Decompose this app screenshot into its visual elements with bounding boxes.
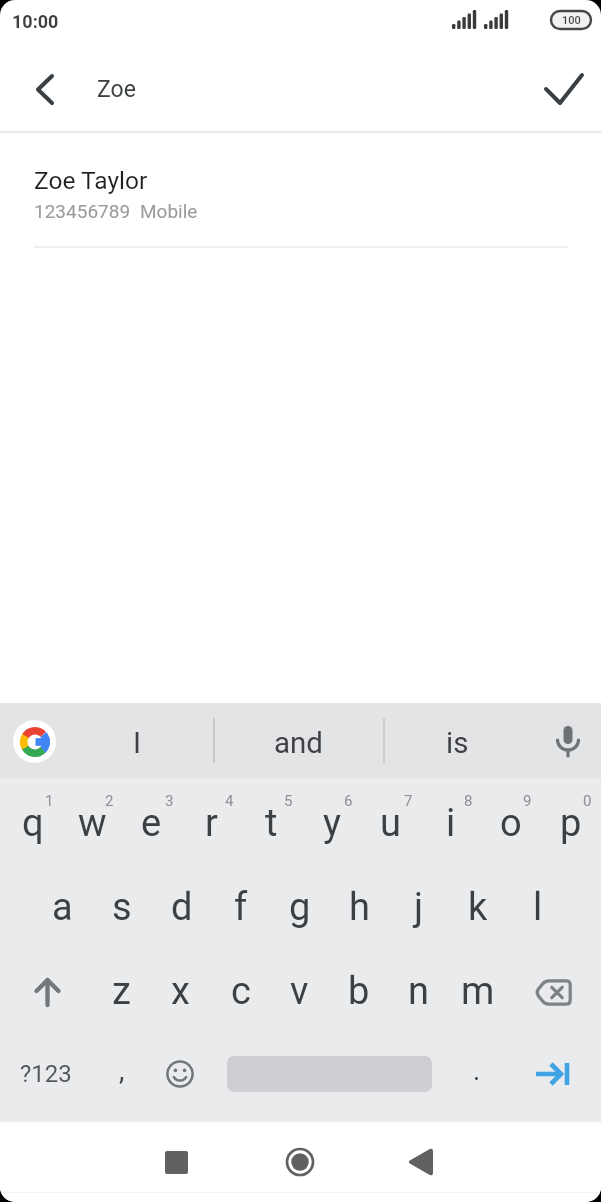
staticText: i	[446, 801, 456, 846]
staticText: a	[52, 885, 73, 930]
staticText: x	[171, 969, 190, 1014]
staticText: z	[112, 969, 131, 1014]
staticText: u	[380, 801, 401, 846]
staticText: 1	[45, 792, 54, 810]
staticText: Zoe Taylor	[34, 166, 148, 195]
staticText: .	[473, 1055, 481, 1087]
staticText: g	[289, 885, 311, 930]
button[interactable]	[152, 1046, 208, 1102]
button[interactable]: x	[151, 950, 210, 1036]
button[interactable]: d	[152, 864, 211, 950]
button[interactable]	[10, 950, 85, 1036]
button[interactable]	[277, 1139, 323, 1185]
button[interactable]: a	[33, 864, 92, 950]
staticText: 3	[165, 792, 174, 810]
staticText: 8	[464, 792, 473, 810]
staticText: h	[349, 885, 370, 930]
staticText: s	[112, 885, 132, 930]
button[interactable]: .	[452, 1041, 502, 1101]
button[interactable]: and	[233, 716, 363, 770]
staticText: v	[290, 969, 309, 1014]
button[interactable]: f	[211, 864, 270, 950]
button[interactable]: h	[330, 864, 389, 950]
button[interactable]: u	[361, 778, 420, 864]
staticText: f	[234, 885, 248, 930]
button[interactable]: j	[389, 864, 448, 950]
button[interactable]	[397, 1139, 443, 1185]
button[interactable]: t	[242, 778, 301, 864]
staticText: 5	[284, 792, 293, 810]
staticText: Mobile	[140, 200, 198, 222]
button[interactable]: r	[182, 778, 241, 864]
button[interactable]: q	[3, 778, 62, 864]
button[interactable]: m	[448, 950, 507, 1036]
button[interactable]: I	[102, 716, 172, 770]
staticText: and	[274, 726, 323, 761]
button[interactable]: n	[389, 950, 448, 1036]
button[interactable]: k	[448, 864, 507, 950]
staticText: j	[414, 885, 424, 930]
staticText: b	[348, 969, 370, 1014]
staticText: p	[560, 801, 582, 846]
button[interactable]	[525, 1046, 581, 1102]
staticText: l	[533, 885, 543, 930]
button[interactable]: o	[481, 778, 540, 864]
button[interactable]: s	[92, 864, 151, 950]
button[interactable]: p	[541, 778, 600, 864]
button[interactable]: e	[122, 778, 181, 864]
staticText: r	[205, 801, 218, 846]
staticText: y	[323, 801, 341, 846]
button[interactable]: c	[211, 950, 270, 1036]
staticText: 4	[225, 792, 234, 810]
staticText: w	[78, 801, 107, 846]
staticText: 2	[105, 792, 114, 810]
staticText: ,	[119, 1055, 125, 1087]
staticText: q	[22, 801, 44, 846]
button[interactable]: i	[421, 778, 480, 864]
button[interactable]	[13, 720, 56, 763]
button[interactable]: ,	[97, 1041, 147, 1101]
button[interactable]: g	[270, 864, 329, 950]
button[interactable]: Zoe Taylor	[0, 140, 601, 248]
staticText: n	[408, 969, 429, 1014]
staticText: is	[446, 726, 469, 761]
button[interactable]: l	[508, 864, 567, 950]
button[interactable]: w	[63, 778, 122, 864]
staticText: t	[265, 801, 278, 846]
button[interactable]	[153, 1139, 199, 1185]
staticText: 10:00	[12, 11, 59, 32]
staticText: m	[461, 969, 495, 1014]
staticText: c	[231, 969, 251, 1014]
staticText: e	[141, 801, 162, 846]
button[interactable]	[22, 65, 68, 113]
button[interactable]: y	[302, 778, 361, 864]
staticText: 123456789	[34, 200, 131, 222]
staticText: 0	[583, 792, 592, 810]
button[interactable]: is	[422, 716, 492, 770]
button[interactable]: z	[92, 950, 151, 1036]
staticText: ?123	[20, 1060, 72, 1088]
staticText: k	[468, 885, 488, 930]
button[interactable]: v	[270, 950, 329, 1036]
staticText: d	[171, 885, 193, 930]
button[interactable]	[544, 715, 592, 767]
button[interactable]	[536, 65, 592, 113]
staticText: 100	[562, 14, 581, 27]
button[interactable]: b	[329, 950, 388, 1036]
button[interactable]: ?123	[6, 1044, 86, 1104]
staticText: I	[133, 726, 142, 761]
staticText: 6	[344, 792, 353, 810]
staticText: o	[500, 801, 522, 846]
staticText: Zoe	[97, 76, 136, 103]
button[interactable]	[514, 950, 591, 1036]
staticText: 7	[404, 792, 413, 810]
staticText: 9	[523, 792, 532, 810]
